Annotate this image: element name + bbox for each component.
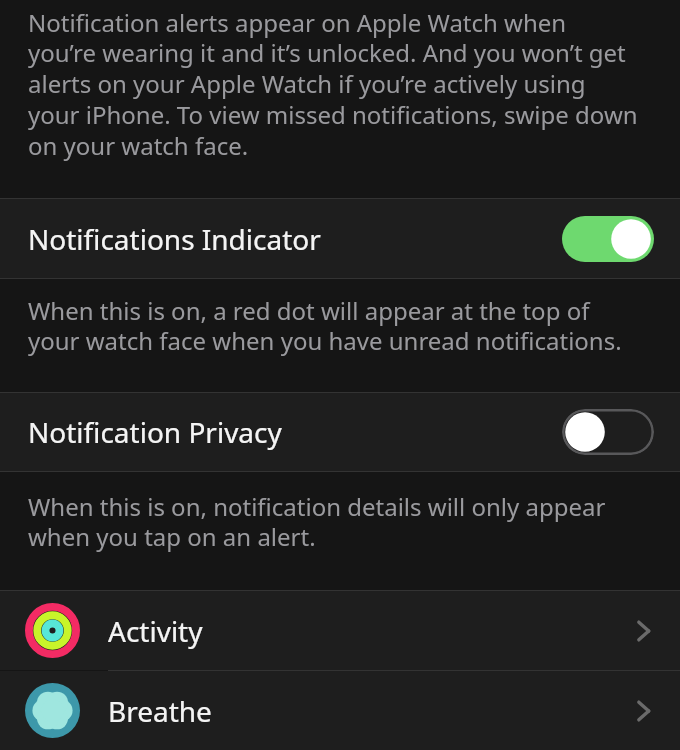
- button[interactable]: Notification Privacy: [0, 393, 680, 471]
- button[interactable]: On: [562, 216, 654, 262]
- button[interactable]: Breathe: [0, 671, 680, 750]
- button[interactable]: Off: [562, 409, 654, 455]
- button[interactable]: Notifications Indicator: [0, 199, 680, 278]
- staticText: Notification Privacy: [28, 413, 562, 451]
- staticText: When this is on, a red dot will appear a…: [28, 294, 638, 357]
- other: Open: [630, 698, 656, 724]
- staticText: Activity: [108, 612, 630, 650]
- staticText: Notifications Indicator: [28, 220, 562, 258]
- staticText: Breathe: [108, 692, 630, 730]
- other: Open: [630, 618, 656, 644]
- button[interactable]: Activity: [0, 591, 680, 670]
- staticText: Notification alerts appear on Apple Watc…: [28, 6, 638, 162]
- staticText: When this is on, notification details wi…: [28, 490, 638, 553]
